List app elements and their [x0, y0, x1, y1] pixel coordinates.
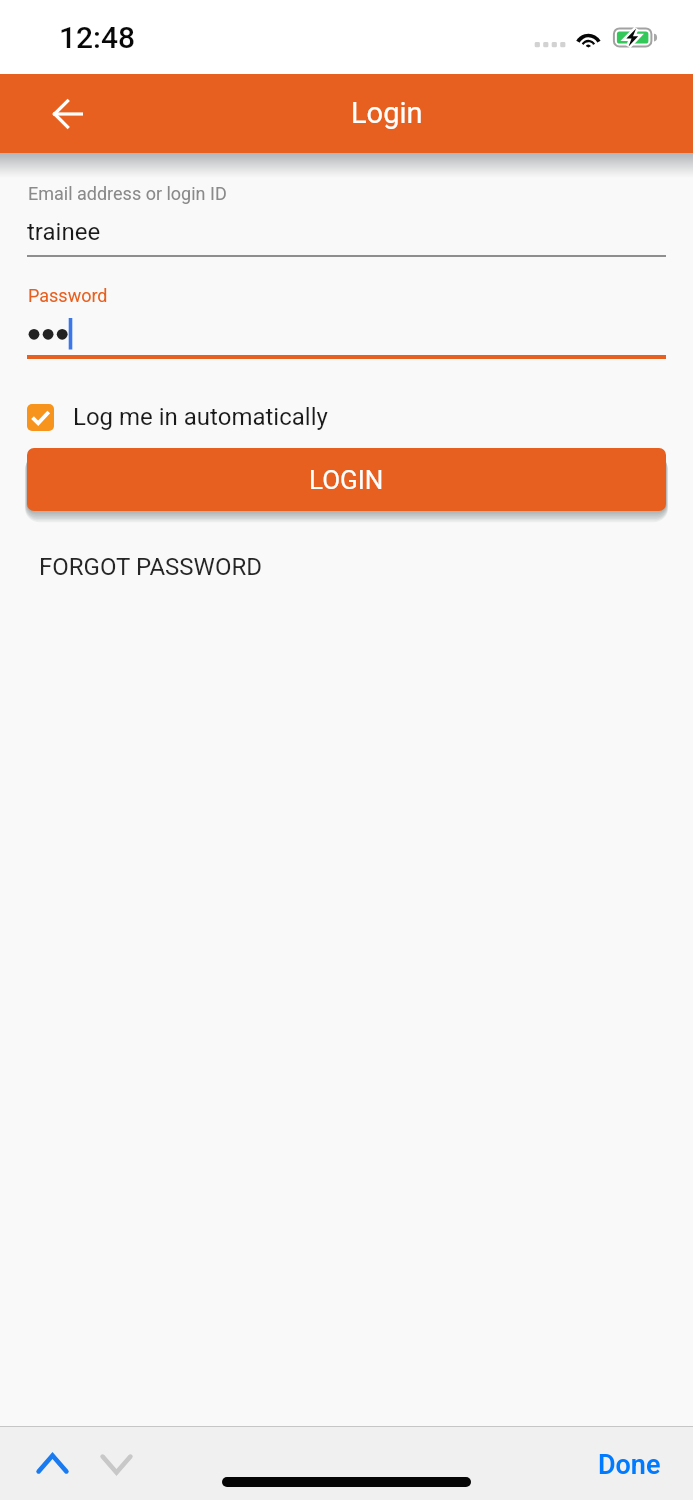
staticText: Password	[28, 285, 108, 306]
button[interactable]: Previous field	[12, 1431, 92, 1485]
button[interactable]: Done	[586, 1441, 673, 1489]
button[interactable]: Email address or login ID	[27, 178, 666, 257]
button[interactable]: Log me in automatically	[27, 399, 347, 435]
button[interactable]: Back	[40, 86, 96, 142]
staticText: trainee	[27, 218, 101, 246]
button[interactable]: FORGOT PASSWORD	[25, 545, 276, 589]
staticText: Email address or login ID	[28, 183, 227, 204]
button[interactable]: Password	[27, 280, 666, 359]
staticText: FORGOT PASSWORD	[39, 553, 262, 581]
staticText: Login	[351, 96, 423, 130]
staticText: LOGIN	[309, 465, 384, 495]
button[interactable]: Next field	[76, 1431, 156, 1485]
staticText: Log me in automatically	[73, 403, 328, 431]
button[interactable]: LOGIN	[27, 448, 666, 511]
staticText: 12:48	[59, 20, 136, 55]
staticText: Done	[598, 1449, 661, 1481]
